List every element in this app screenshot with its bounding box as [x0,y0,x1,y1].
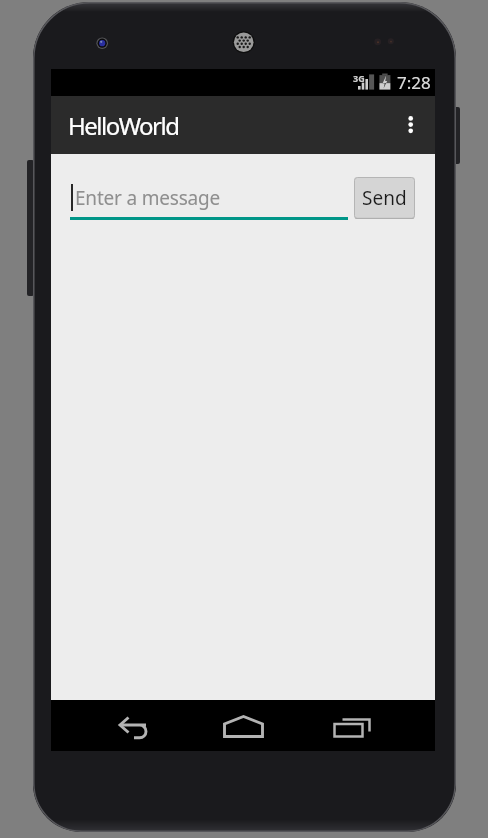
staticText: 3G [353,72,365,84]
staticText: HelloWorld [68,109,179,142]
button[interactable] [307,700,435,751]
button[interactable]: Send [354,177,415,219]
button[interactable] [179,700,307,751]
staticText: Send [362,185,407,211]
button[interactable] [51,700,179,751]
staticText: 7:28 [397,71,431,94]
staticText: Enter a message [75,185,221,211]
button[interactable]: Enter a message [70,177,348,219]
button[interactable] [387,96,435,154]
